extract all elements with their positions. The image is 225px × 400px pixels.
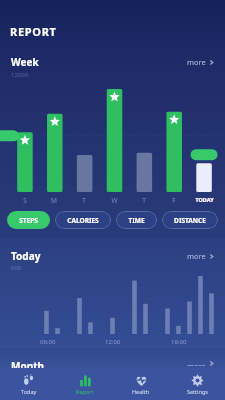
staticText: more [187, 361, 206, 366]
staticText: 12000 [11, 71, 29, 79]
staticText: Week [11, 55, 39, 69]
staticText: REPORT [10, 24, 57, 39]
staticText: Today [11, 249, 41, 263]
button[interactable]: Health [113, 368, 169, 400]
button[interactable]: more [185, 249, 216, 263]
button[interactable]: Report [57, 368, 113, 400]
staticText: STEPS [19, 216, 38, 225]
staticText: F [172, 196, 176, 205]
button[interactable]: more [185, 55, 216, 69]
staticText: M [51, 196, 57, 205]
staticText: S [23, 196, 27, 205]
button[interactable]: TIME [116, 211, 157, 229]
staticText: W [111, 196, 118, 205]
staticText: 600 [11, 264, 22, 272]
button[interactable]: Settings [169, 368, 225, 400]
staticText: TIME [128, 216, 145, 225]
staticText: TODAY [195, 196, 214, 203]
staticText: Health [132, 388, 150, 395]
button[interactable]: DISTANCE [162, 211, 218, 229]
staticText: Report [76, 388, 94, 395]
staticText: DISTANCE [174, 216, 206, 225]
staticText: T [82, 196, 86, 205]
staticText: Month [11, 359, 45, 368]
staticText: 12:00 [105, 338, 121, 346]
staticText: Settings [187, 388, 208, 395]
button[interactable]: STEPS [7, 211, 50, 229]
staticText: CALORIES [67, 216, 99, 225]
staticText: 06:00 [40, 338, 56, 346]
staticText: more [187, 251, 206, 261]
staticText: more [187, 57, 206, 67]
staticText: 18:00 [171, 338, 187, 346]
button[interactable]: CALORIES [55, 211, 111, 229]
button[interactable]: more [185, 359, 216, 368]
button[interactable]: Today [0, 368, 57, 400]
staticText: Today [21, 388, 37, 395]
staticText: T [142, 196, 146, 205]
